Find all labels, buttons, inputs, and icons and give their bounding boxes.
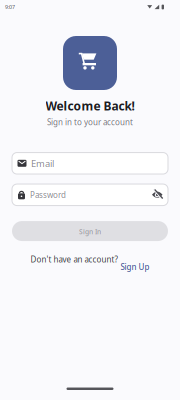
staticText: Don't have an account? bbox=[30, 254, 117, 265]
staticText: Sign In bbox=[79, 227, 101, 236]
button[interactable]: Password bbox=[12, 184, 168, 206]
staticText: 9:07 bbox=[5, 3, 15, 11]
button[interactable]: Sign In bbox=[12, 221, 168, 241]
button[interactable]: Sign Up bbox=[120, 254, 149, 272]
button[interactable]: Show password bbox=[151, 190, 163, 199]
staticText: Email bbox=[31, 157, 54, 169]
staticText: Sign Up bbox=[120, 262, 149, 272]
staticText: Welcome Back! bbox=[45, 98, 134, 114]
button[interactable]: Email bbox=[12, 153, 168, 174]
staticText: Password bbox=[30, 189, 66, 200]
staticText: Sign in to your account bbox=[47, 117, 133, 127]
